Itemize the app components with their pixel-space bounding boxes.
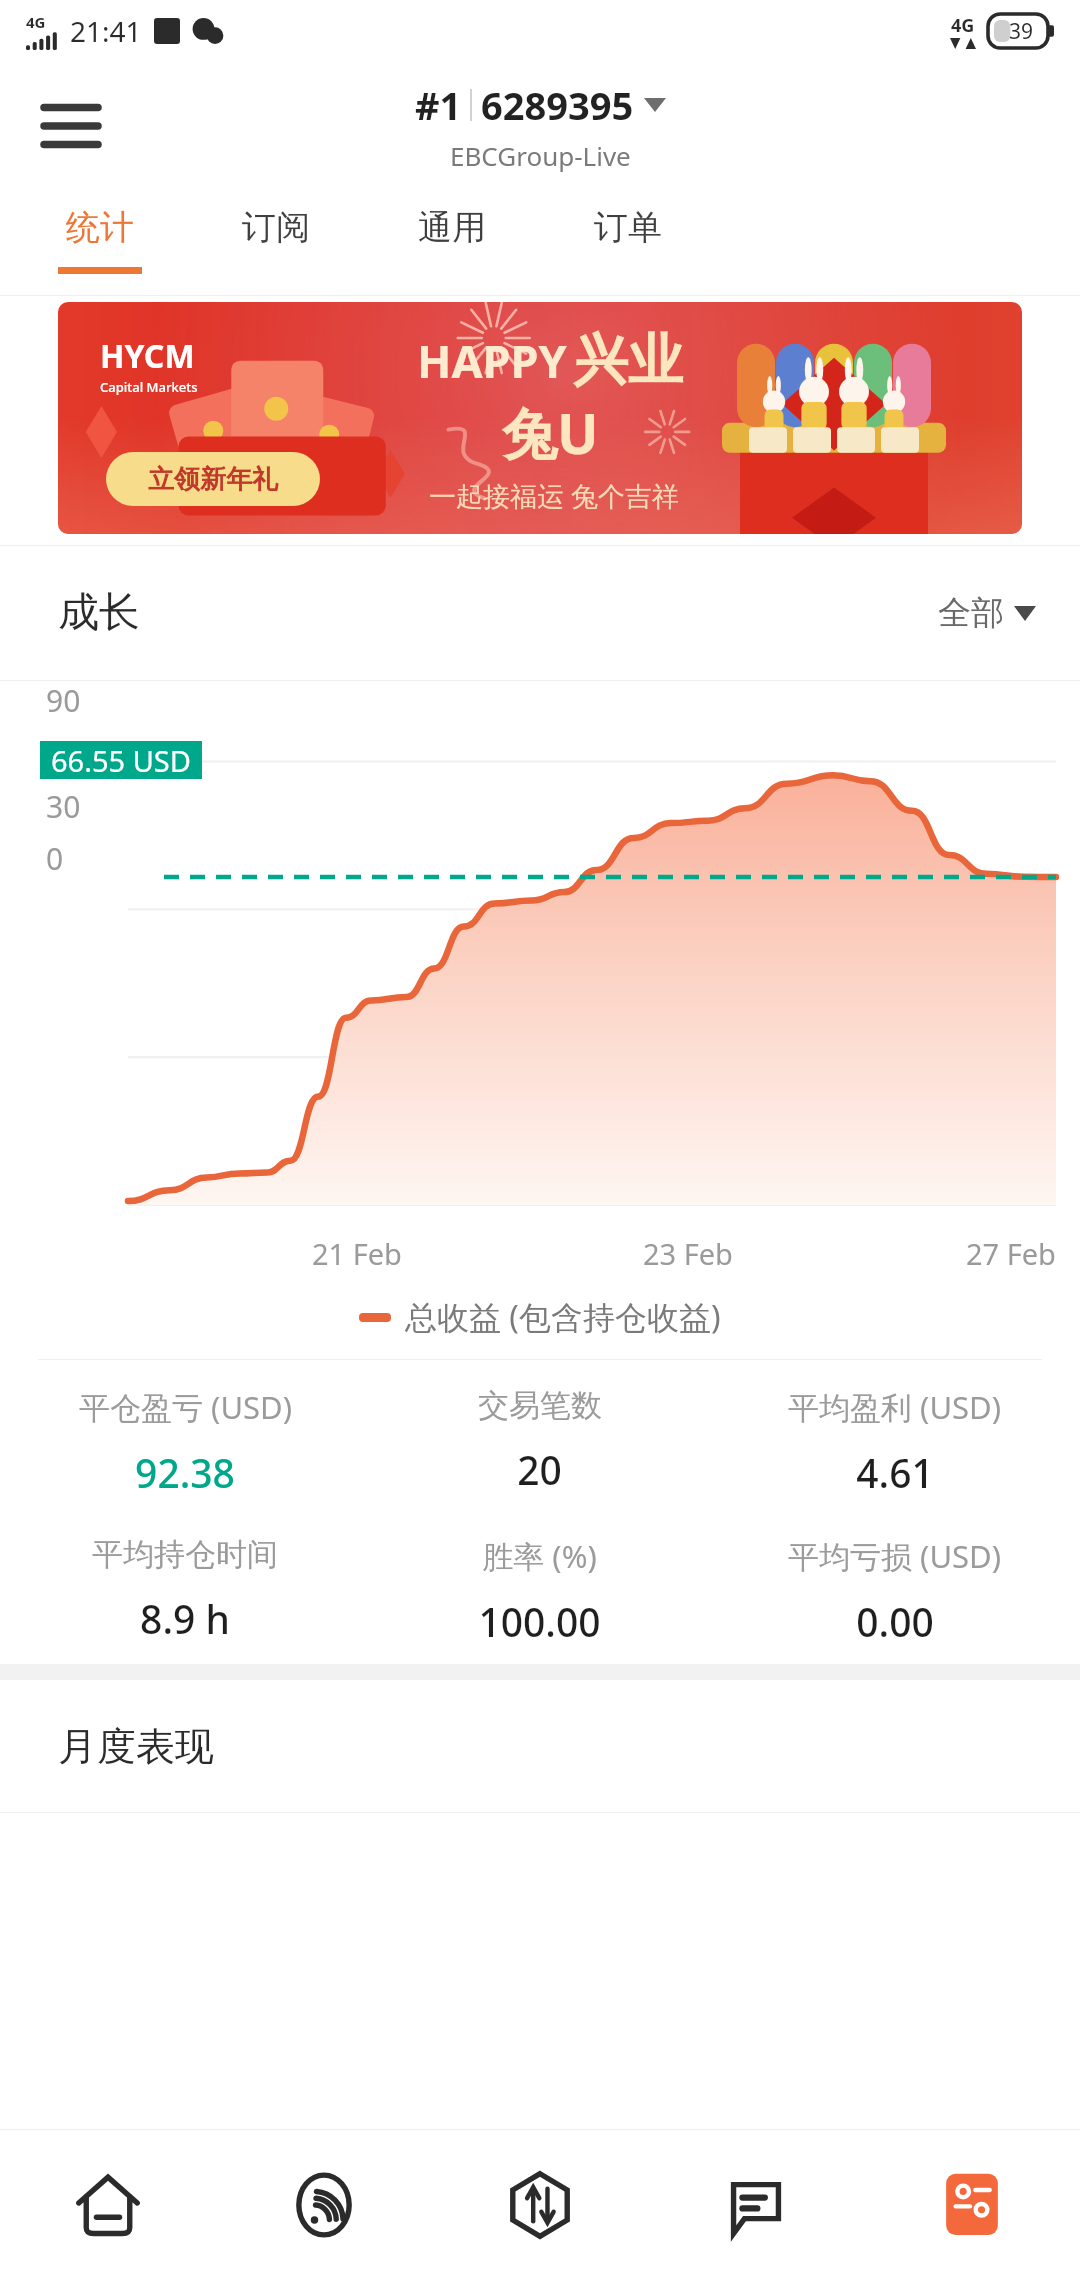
staticText: 4G [26,12,46,32]
staticText: 交易笔数 [478,1386,602,1425]
button[interactable]: New Year promotion banner [58,302,1022,534]
button[interactable]: Trade [432,2130,648,2280]
staticText: 订单 [594,206,662,249]
staticText: #1 [415,79,462,131]
button[interactable]: 通用 [364,190,540,296]
staticText: HYCM [100,334,195,378]
staticText: 6289395 [481,79,634,131]
staticText: 平均持仓时间 [92,1535,278,1574]
button[interactable]: 全部 [938,592,1036,634]
staticText: 92.38 [135,1446,235,1499]
staticText: 30 [46,786,81,827]
button[interactable]: 平均盈利 (USD) [717,1386,1072,1499]
staticText: 平仓盈亏 (USD) [79,1386,292,1428]
button[interactable]: 订单 [540,190,716,296]
staticText: 平均盈利 (USD) [788,1386,1001,1428]
staticText: 成长 [58,587,140,639]
button[interactable]: Chat [648,2130,864,2280]
button[interactable]: 胜率 (%) [362,1535,717,1648]
staticText: 兔U [502,395,599,470]
button[interactable]: 交易笔数 [362,1386,717,1496]
staticText: 兴业 [573,326,683,395]
staticText: HAPPY [417,330,567,391]
staticText: 0 [46,838,64,879]
staticText: 39 [1009,17,1034,46]
staticText: 统计 [66,206,134,249]
staticText: 8.9 h [140,1592,230,1645]
button[interactable]: 平均持仓时间 [8,1535,362,1645]
staticText: 总收益 (包含持仓收益) [405,1295,721,1339]
button[interactable]: 立领新年礼 [106,452,320,506]
staticText: 100.00 [478,1595,601,1648]
staticText: 订阅 [242,206,310,249]
staticText: 0.00 [856,1595,934,1648]
staticText: 27 Feb [966,1234,1056,1273]
button[interactable]: Menu [32,87,110,165]
staticText: 21:41 [70,12,142,50]
staticText: 胜率 (%) [482,1535,597,1577]
staticText: 4G [951,13,975,38]
staticText: Capital Markets [100,378,198,396]
staticText: 66.55 USD [51,741,191,779]
button[interactable]: Home [0,2130,216,2280]
staticText: 20 [517,1443,562,1496]
button[interactable]: More [864,2130,1080,2280]
staticText: EBCGroup-Live [450,138,631,173]
staticText: 60 [46,733,81,774]
button[interactable]: 统计 [12,190,188,296]
button[interactable]: #1 [415,79,666,173]
button[interactable]: 平均亏损 (USD) [717,1535,1072,1648]
button[interactable]: 订阅 [188,190,364,296]
staticText: 月度表现 [58,1722,214,1771]
staticText: 立领新年礼 [148,463,278,496]
button[interactable]: Signals [216,2130,432,2280]
button[interactable]: 平仓盈亏 (USD) [8,1386,362,1499]
staticText: 通用 [418,206,486,249]
staticText: 平均亏损 (USD) [788,1535,1001,1577]
staticText: 一起接福运 兔个吉祥 [429,477,680,514]
staticText: 21 Feb [312,1234,402,1273]
staticText: 4.61 [856,1446,934,1499]
staticText: 23 Feb [643,1234,733,1273]
staticText: 全部 [938,592,1004,634]
staticText: 90 [46,680,81,721]
